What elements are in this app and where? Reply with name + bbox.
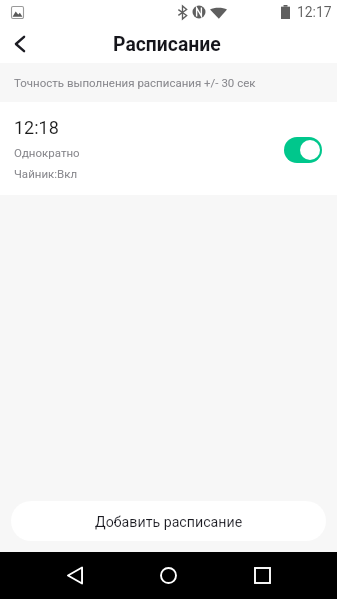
button[interactable]: Toggle schedule [284, 137, 322, 163]
button[interactable]: 12:18 [0, 102, 337, 195]
button[interactable]: Recents [238, 552, 286, 599]
button[interactable]: Back [51, 552, 99, 599]
button[interactable]: Добавить расписание [11, 501, 326, 541]
staticText: 12:18 [14, 117, 59, 138]
staticText: Однократно [14, 146, 80, 159]
staticText: 12:17 [297, 4, 332, 20]
staticText: Расписание [113, 33, 221, 56]
staticText: Точность выполнения расписания +/- 30 се… [14, 76, 256, 89]
button[interactable]: Home [144, 552, 192, 599]
button[interactable]: Back [0, 24, 39, 63]
staticText: Чайник:Вкл [14, 167, 78, 180]
staticText: Добавить расписание [95, 514, 243, 531]
